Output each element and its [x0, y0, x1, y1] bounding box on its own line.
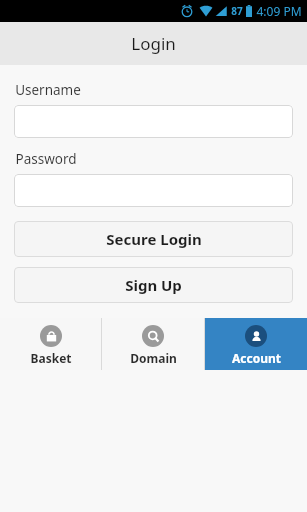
button[interactable]	[14, 174, 293, 207]
staticText: 87	[231, 4, 243, 18]
button[interactable]: Sign Up	[14, 267, 293, 303]
staticText: 4:09 PM	[256, 3, 302, 19]
staticText: Secure Login	[106, 229, 202, 249]
staticText: Account	[232, 350, 281, 366]
button[interactable]: Secure Login	[14, 221, 293, 257]
staticText: Domain	[130, 350, 177, 366]
button[interactable]	[14, 105, 293, 138]
staticText: Login	[131, 32, 176, 55]
staticText: Sign Up	[125, 275, 182, 295]
button[interactable]: Basket	[0, 318, 101, 370]
staticText: Password	[15, 150, 77, 168]
button[interactable]: Domain	[102, 318, 204, 370]
button[interactable]: Account	[205, 318, 307, 370]
staticText: Basket	[30, 350, 72, 366]
staticText: Username	[15, 81, 81, 99]
